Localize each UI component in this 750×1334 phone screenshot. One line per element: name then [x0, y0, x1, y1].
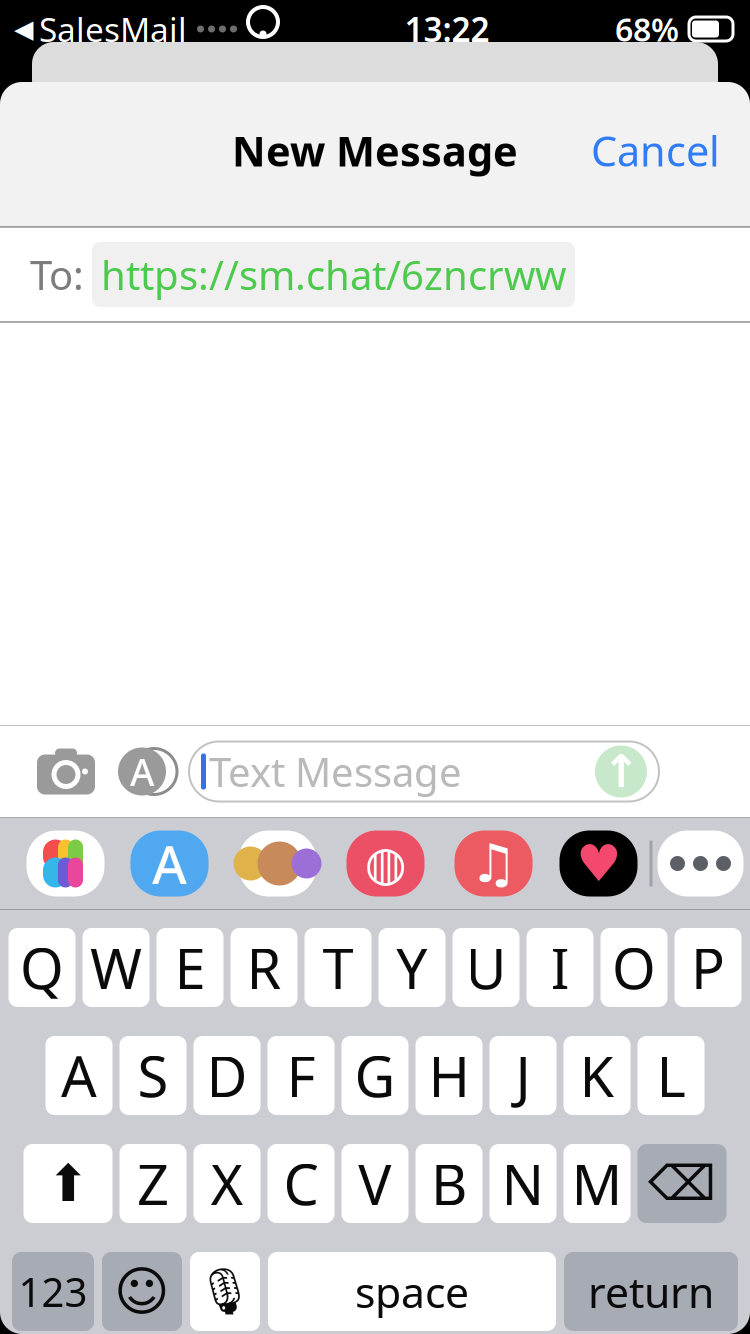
button[interactable]: Z — [119, 1144, 186, 1223]
staticText: ◍ — [364, 836, 406, 891]
staticText: New Message — [232, 123, 518, 178]
staticText: Z — [137, 1146, 169, 1221]
staticText: F — [286, 1038, 315, 1113]
button[interactable]: M — [563, 1144, 630, 1223]
staticText: Cancel — [591, 123, 720, 178]
staticText: D — [206, 1038, 247, 1113]
staticText: 123 — [18, 1265, 87, 1318]
staticText: 🎙 — [196, 1266, 254, 1317]
button[interactable]: https://sm.chat/6zncrww — [92, 242, 575, 307]
button[interactable]: C — [267, 1144, 334, 1223]
button[interactable]: P — [674, 928, 741, 1007]
button[interactable]: Cancel — [573, 109, 738, 192]
button[interactable]: E — [156, 928, 223, 1007]
button[interactable]: Camera — [26, 731, 106, 811]
button[interactable]: A — [45, 1036, 112, 1115]
staticText: N — [501, 1146, 544, 1221]
staticText: A — [130, 747, 154, 796]
button[interactable]: Delete — [637, 1144, 726, 1223]
staticText: ↑ — [602, 746, 640, 797]
button[interactable]: T — [304, 928, 371, 1007]
button[interactable]: App Store — [115, 828, 223, 898]
staticText: H — [428, 1038, 469, 1113]
staticText: I — [550, 930, 569, 1005]
button[interactable]: Fitness — [547, 828, 649, 898]
button[interactable]: W — [82, 928, 149, 1007]
button[interactable]: return — [564, 1252, 738, 1331]
staticText: https://sm.chat/6zncrww — [101, 248, 566, 301]
button[interactable]: S — [119, 1036, 186, 1115]
button[interactable]: space — [268, 1252, 556, 1331]
staticText: V — [358, 1146, 392, 1221]
button[interactable]: Q — [8, 928, 75, 1007]
button[interactable]: N — [489, 1144, 556, 1223]
button[interactable]: U — [452, 928, 519, 1007]
button[interactable]: Dictation — [190, 1252, 260, 1331]
staticText: S — [137, 1038, 168, 1113]
button[interactable]: V — [341, 1144, 408, 1223]
staticText: ☺ — [114, 1261, 170, 1322]
staticText: P — [691, 930, 725, 1005]
staticText: ♫ — [469, 833, 517, 894]
staticText: L — [656, 1038, 685, 1113]
staticText: ◀ — [14, 15, 33, 43]
staticText: B — [431, 1146, 467, 1221]
button[interactable]: R — [230, 928, 297, 1007]
button[interactable]: Images — [331, 828, 439, 898]
staticText: R — [246, 930, 281, 1005]
button[interactable]: D — [193, 1036, 260, 1115]
button[interactable]: Photos — [15, 828, 115, 898]
button[interactable]: Music — [439, 828, 547, 898]
button[interactable]: B — [415, 1144, 482, 1223]
staticText: ♥ — [576, 835, 621, 892]
button[interactable]: More apps — [652, 828, 748, 898]
button[interactable]: X — [193, 1144, 260, 1223]
staticText: J — [515, 1038, 530, 1113]
staticText: Text Message — [209, 745, 462, 798]
staticText: G — [354, 1038, 395, 1113]
button[interactable]: Shift — [23, 1144, 112, 1223]
staticText: ⌫ — [648, 1156, 716, 1211]
staticText: 13:22 — [404, 7, 489, 51]
staticText: E — [174, 930, 205, 1005]
staticText: ⬆ — [47, 1155, 89, 1212]
staticText: M — [571, 1146, 622, 1221]
button[interactable]: K — [563, 1036, 630, 1115]
staticText: K — [579, 1038, 614, 1113]
button[interactable]: H — [415, 1036, 482, 1115]
staticText: 68% — [615, 8, 679, 50]
staticText: Y — [396, 930, 428, 1005]
button[interactable]: L — [637, 1036, 704, 1115]
button[interactable]: Y — [378, 928, 445, 1007]
button[interactable]: I — [526, 928, 593, 1007]
button[interactable]: Emoji — [102, 1252, 182, 1331]
staticText: space — [355, 1263, 469, 1320]
button[interactable]: G — [341, 1036, 408, 1115]
staticText: W — [90, 930, 142, 1005]
staticText: C — [283, 1146, 318, 1221]
staticText: U — [465, 930, 506, 1005]
button[interactable]: Memoji — [223, 828, 331, 898]
button[interactable]: F — [267, 1036, 334, 1115]
staticText: To: — [30, 248, 84, 301]
staticText: Q — [20, 930, 64, 1005]
button[interactable]: O — [600, 928, 667, 1007]
button[interactable]: Send — [595, 745, 647, 797]
button[interactable]: 123 — [12, 1252, 94, 1331]
staticText: A — [61, 1038, 97, 1113]
staticText: X — [210, 1146, 243, 1221]
staticText: return — [588, 1263, 714, 1320]
staticText: A — [152, 828, 187, 899]
staticText: SalesMail — [39, 7, 187, 51]
staticText: T — [322, 930, 353, 1005]
button[interactable]: Apps — [106, 731, 186, 811]
staticText: O — [612, 930, 656, 1005]
button[interactable]: J — [489, 1036, 556, 1115]
